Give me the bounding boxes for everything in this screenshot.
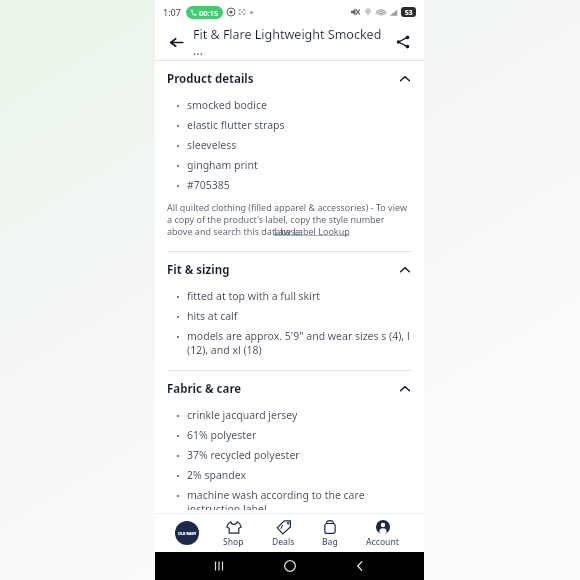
other: Back <box>353 559 367 573</box>
staticText: models are approx. 5'9" and wear sizes s… <box>187 329 412 357</box>
button[interactable]: Account <box>362 517 404 550</box>
staticText: Fit & sizing <box>167 262 398 278</box>
staticText: sleeveless <box>187 138 237 152</box>
button[interactable]: Fit & sizing <box>167 252 412 286</box>
staticText: All quilted clothing (filled apparel & a… <box>167 201 410 237</box>
staticText: 53 <box>405 8 413 17</box>
staticText: crinkle jacquard jersey <box>187 408 298 422</box>
staticText: Bag <box>322 536 338 548</box>
staticText: Deals <box>272 536 295 548</box>
button[interactable]: Shop <box>219 517 248 550</box>
other: Collapse Fit & sizing <box>398 263 412 277</box>
staticText: 00:15 <box>199 8 219 18</box>
staticText: 2% spandex <box>187 468 247 482</box>
other: Home <box>283 559 297 573</box>
button[interactable]: Law Label Lookup <box>274 225 350 237</box>
staticText: 37% recycled polyester <box>187 448 300 462</box>
staticText: smocked bodice <box>187 98 267 112</box>
button[interactable]: Fabric & care <box>167 371 412 405</box>
staticText: machine wash according to the care instr… <box>187 488 412 510</box>
button[interactable]: Deals <box>268 517 299 550</box>
staticText: Shop <box>223 536 244 548</box>
other: Recents <box>212 559 226 573</box>
staticText: Fabric & care <box>167 381 398 397</box>
staticText: OLD NAVY <box>178 531 197 536</box>
staticText: Product details <box>167 71 398 87</box>
button[interactable]: Share <box>392 31 414 53</box>
button[interactable]: Old Navy home <box>175 521 199 545</box>
other: Collapse Fabric & care <box>398 382 412 396</box>
staticText: hits at calf <box>187 309 238 323</box>
staticText: 61% polyester <box>187 428 257 442</box>
staticText: gingham print <box>187 158 258 172</box>
staticText: fitted at top with a full skirt <box>187 289 321 303</box>
button[interactable]: Bag <box>318 517 342 550</box>
staticText: 1:07 <box>163 6 181 18</box>
other: Collapse Product details <box>398 72 412 86</box>
button[interactable]: Product details <box>167 61 412 95</box>
button[interactable]: Back <box>165 31 187 53</box>
staticText: #705385 <box>187 178 230 192</box>
staticText: elastic flutter straps <box>187 118 285 132</box>
staticText: Fit & Flare Lightweight Smocked … <box>193 26 388 58</box>
staticText: Account <box>366 536 400 548</box>
